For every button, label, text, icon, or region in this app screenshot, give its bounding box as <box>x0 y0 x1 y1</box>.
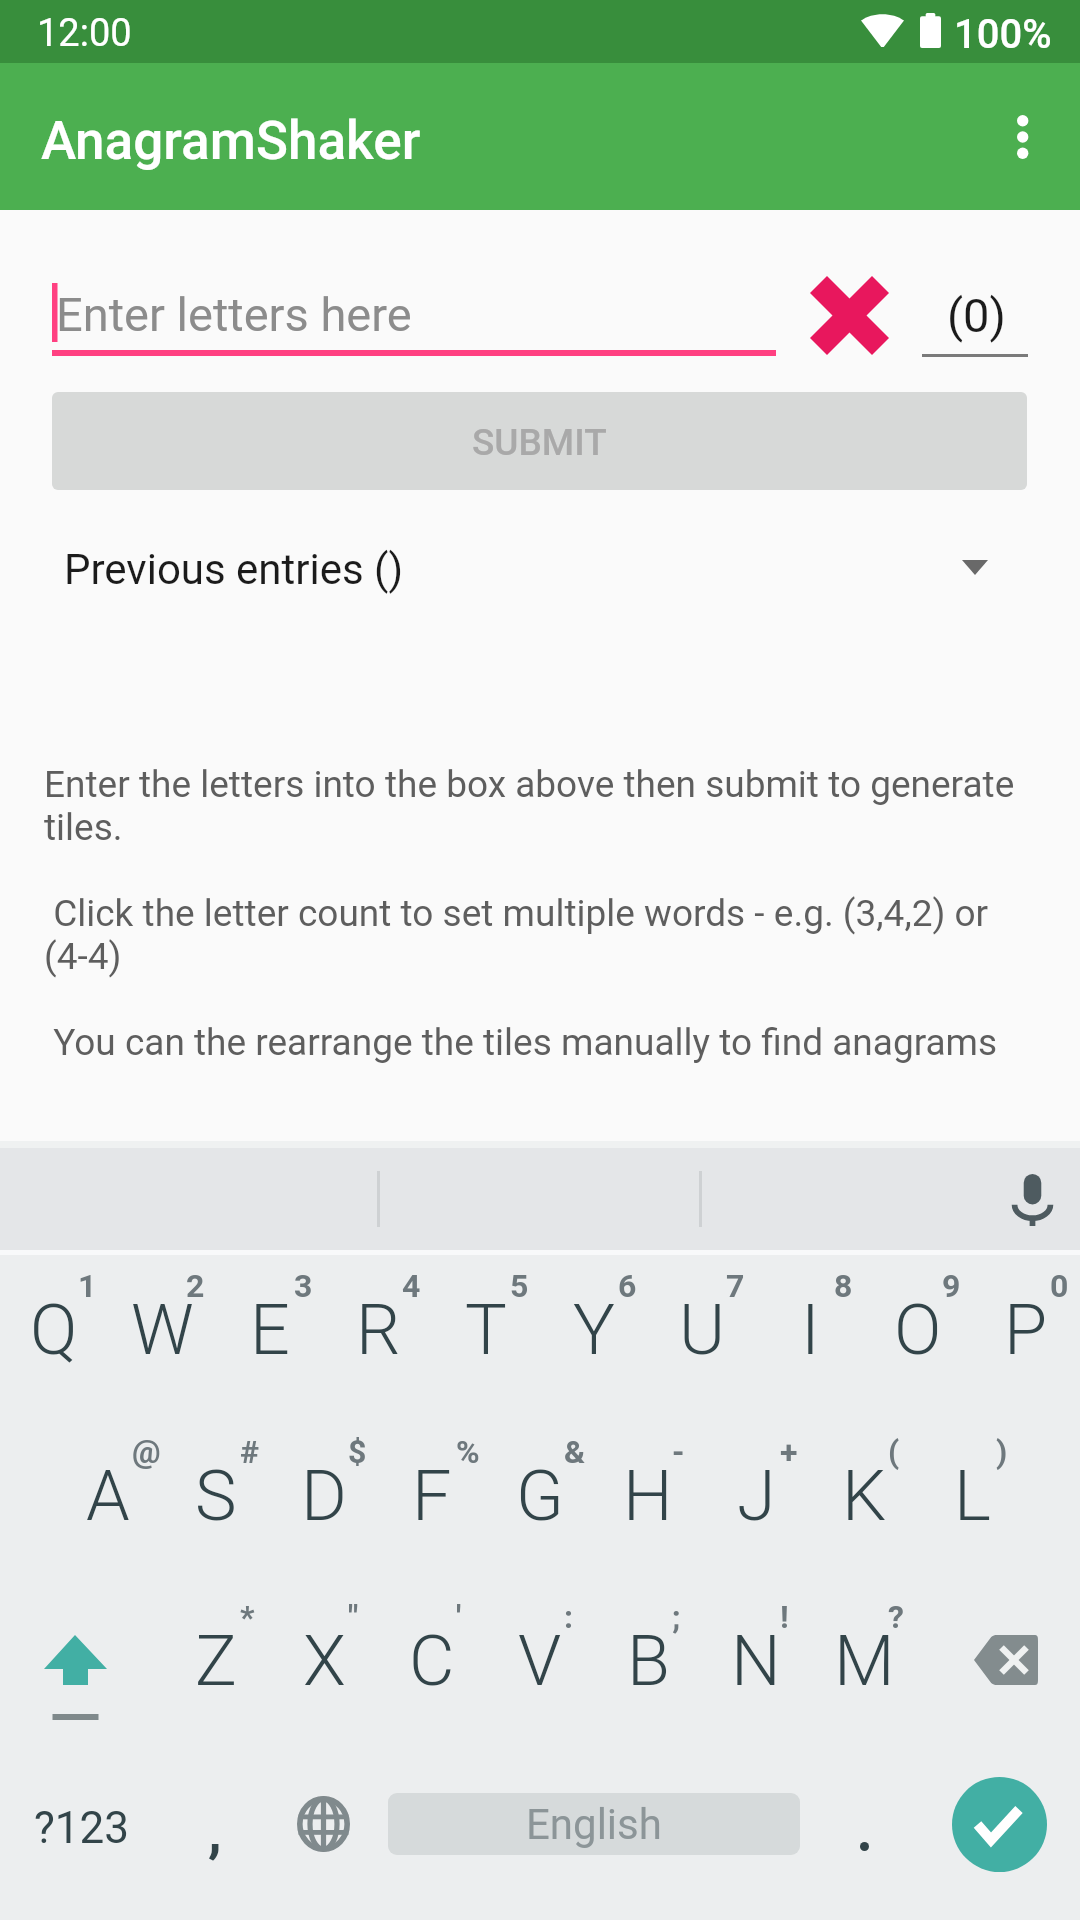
staticText: $ <box>348 1433 367 1471</box>
staticText: C <box>409 1620 455 1702</box>
button[interactable]: D <box>270 1408 378 1560</box>
staticText: M <box>834 1620 895 1702</box>
button[interactable]: H <box>594 1408 702 1560</box>
button[interactable]: English <box>388 1793 800 1855</box>
staticText: 0 <box>1050 1267 1069 1305</box>
staticText: ' <box>456 1598 462 1636</box>
button[interactable]: I <box>756 1242 864 1394</box>
staticText: R <box>356 1289 401 1371</box>
staticText: E <box>250 1289 290 1371</box>
staticText: X <box>303 1620 346 1702</box>
staticText: S <box>195 1455 237 1537</box>
staticText: SUBMIT <box>472 421 607 464</box>
staticText: 3 <box>294 1267 313 1305</box>
staticText: % <box>456 1433 480 1471</box>
staticText: + <box>780 1433 798 1471</box>
button[interactable]: K <box>810 1408 918 1560</box>
staticText: Previous entries () <box>64 545 404 594</box>
staticText: ; <box>672 1598 681 1636</box>
button[interactable]: Z <box>162 1573 270 1725</box>
staticText: 7 <box>726 1267 745 1305</box>
staticText: 6 <box>618 1267 637 1305</box>
button[interactable]: Enter <box>952 1777 1047 1872</box>
button[interactable]: Voice input <box>992 1149 1072 1251</box>
staticText: P <box>1004 1289 1048 1371</box>
button[interactable]: L <box>918 1408 1026 1560</box>
button[interactable]: P <box>972 1242 1080 1394</box>
staticText: - <box>672 1433 685 1471</box>
button[interactable]: Letter count <box>922 280 1028 360</box>
staticText: J <box>737 1455 776 1537</box>
staticText: 4 <box>402 1267 421 1305</box>
staticText: Enter the letters into the box above the… <box>44 763 1034 1064</box>
button[interactable]: Clear <box>795 261 903 369</box>
button[interactable]: T <box>432 1242 540 1394</box>
button[interactable]: SUBMIT <box>52 392 1027 490</box>
button[interactable]: N <box>702 1573 810 1725</box>
staticText: " <box>348 1598 359 1636</box>
staticText: O <box>894 1289 942 1371</box>
staticText: F <box>412 1455 452 1537</box>
button[interactable]: Y <box>540 1242 648 1394</box>
staticText: V <box>518 1620 562 1702</box>
staticText: Q <box>30 1289 78 1371</box>
staticText: ? <box>888 1598 904 1636</box>
staticText: AnagramShaker <box>41 110 421 172</box>
button[interactable]: S <box>162 1408 270 1560</box>
staticText: Enter letters here <box>56 287 412 342</box>
staticText: ( <box>888 1433 900 1471</box>
button[interactable]: U <box>648 1242 756 1394</box>
button[interactable]: Enter letters here <box>52 283 776 356</box>
staticText: U <box>679 1289 726 1371</box>
button[interactable]: Q <box>0 1242 108 1394</box>
staticText: A <box>86 1455 130 1537</box>
staticText: G <box>516 1455 564 1537</box>
staticText: ) <box>996 1433 1008 1471</box>
staticText: English <box>526 1800 662 1849</box>
button[interactable]: W <box>108 1242 216 1394</box>
staticText: D <box>301 1455 347 1537</box>
button[interactable]: Previous entries () <box>0 508 1080 628</box>
button[interactable]: C <box>378 1573 486 1725</box>
button[interactable]: ?123 <box>0 1764 160 1884</box>
staticText: H <box>623 1455 673 1537</box>
button[interactable]: More options <box>970 63 1080 210</box>
staticText: Y <box>573 1289 615 1371</box>
staticText: : <box>564 1598 574 1636</box>
button[interactable]: B <box>594 1573 702 1725</box>
staticText: N <box>731 1620 781 1702</box>
staticText: B <box>627 1620 670 1702</box>
staticText: Z <box>195 1620 237 1702</box>
staticText: 9 <box>942 1267 961 1305</box>
staticText: K <box>842 1455 887 1537</box>
button[interactable]: J <box>702 1408 810 1560</box>
button[interactable]: G <box>486 1408 594 1560</box>
staticText: (0) <box>947 288 1006 343</box>
staticText: L <box>954 1455 991 1537</box>
button[interactable]: Change language <box>273 1764 373 1884</box>
staticText: ! <box>780 1598 789 1636</box>
button[interactable]: V <box>486 1573 594 1725</box>
staticText: T <box>465 1289 507 1371</box>
button[interactable]: O <box>864 1242 972 1394</box>
button[interactable]: R <box>324 1242 432 1394</box>
button[interactable]: X <box>270 1573 378 1725</box>
button[interactable]: E <box>216 1242 324 1394</box>
staticText: @ <box>132 1433 161 1471</box>
staticText: # <box>240 1433 260 1471</box>
staticText: I <box>801 1289 820 1371</box>
button[interactable]: A <box>54 1408 162 1560</box>
staticText: 12:00 <box>37 11 132 56</box>
button[interactable]: Period <box>814 1764 914 1884</box>
staticText: 5 <box>510 1267 529 1305</box>
staticText: 100% <box>954 11 1052 58</box>
button[interactable]: F <box>378 1408 486 1560</box>
button[interactable]: , <box>166 1764 266 1884</box>
button[interactable]: M <box>810 1573 918 1725</box>
staticText: & <box>564 1433 585 1471</box>
staticText: 2 <box>186 1267 205 1305</box>
staticText: W <box>131 1289 194 1371</box>
button[interactable]: Backspace <box>948 1610 1063 1710</box>
staticText: , <box>208 1799 222 1865</box>
button[interactable]: Shift <box>20 1623 131 1733</box>
